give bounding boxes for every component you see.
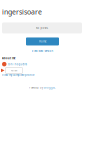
button[interactable]: View my complete profile: [0, 73, 34, 77]
staticText: Follow: [10, 69, 17, 72]
staticText: Blogger.: [44, 86, 56, 89]
button[interactable]: toni nogueira: [0, 62, 26, 66]
button[interactable]: Home: [26, 37, 59, 45]
staticText: Powered by: [29, 86, 44, 89]
staticText: View web version: [31, 49, 53, 53]
staticText: toni nogueira: [7, 62, 26, 66]
staticText: About me: [2, 56, 16, 60]
staticText: No posts.: [35, 26, 48, 30]
button[interactable]: Follow: [5, 67, 22, 73]
staticText: View my complete profile: [2, 73, 34, 77]
staticText: ingersisoare: [2, 7, 42, 16]
staticText: Home: [39, 40, 46, 43]
button[interactable]: View web version: [0, 48, 85, 53]
